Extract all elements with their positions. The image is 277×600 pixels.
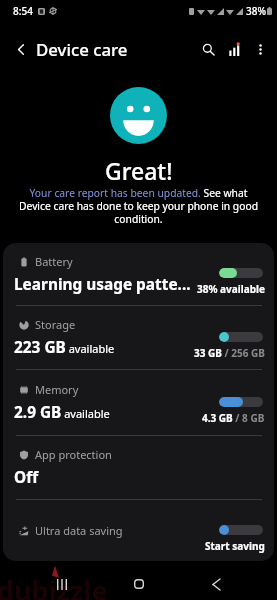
button[interactable]: Usage statistics (221, 36, 247, 62)
button[interactable]: Back (200, 568, 232, 600)
staticText: Off (14, 467, 39, 488)
button[interactable]: Recent apps (46, 568, 78, 600)
staticText: Battery (35, 254, 73, 269)
staticText: Memory (35, 382, 79, 397)
staticText: 33 GB / 256 GB (194, 346, 265, 360)
button[interactable]: Home (123, 568, 155, 600)
button[interactable]: Navigate up (8, 36, 34, 62)
staticText: Ultra data saving (35, 523, 123, 538)
staticText: Learning usage patte... (14, 274, 191, 295)
button[interactable]: App protection (3, 436, 274, 499)
staticText: 38% available (197, 282, 265, 296)
button[interactable]: Memory (3, 370, 274, 435)
staticText: 4.3 GB / 8 GB (202, 411, 265, 425)
staticText: 8:54 (13, 4, 33, 18)
button[interactable]: Battery (3, 243, 274, 305)
button[interactable]: Search (195, 36, 221, 62)
staticText: Storage (35, 317, 76, 332)
button[interactable]: Ultra data saving (3, 500, 274, 561)
staticText: App protection (35, 447, 112, 462)
staticText: Great! (105, 155, 173, 186)
staticText: Your care report has been updated. See w… (14, 186, 263, 226)
staticText: Device care (36, 38, 128, 61)
staticText: 2.9 GB available (14, 402, 110, 423)
button[interactable]: More options (247, 36, 273, 62)
staticText: 38% (246, 4, 266, 18)
button[interactable]: Storage (3, 306, 274, 369)
staticText: Start saving (205, 539, 265, 553)
staticText: dubizzle (0, 572, 108, 600)
staticText: 223 GB available (14, 337, 115, 358)
